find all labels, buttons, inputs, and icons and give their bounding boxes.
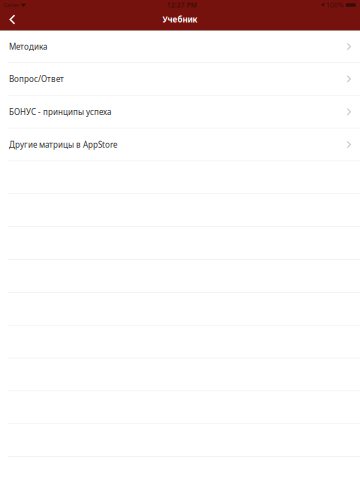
- staticText: 12:27 PM: [167, 1, 197, 9]
- staticText: БОНУС - принципы успеха: [9, 106, 111, 117]
- button[interactable]: Методика: [0, 31, 360, 63]
- staticText: 100%: [326, 1, 344, 9]
- staticText: Методика: [9, 41, 47, 52]
- button[interactable]: Back: [0, 10, 24, 29]
- staticText: Carrier: [4, 1, 20, 9]
- button[interactable]: Вопрос/Ответ: [0, 63, 360, 96]
- staticText: Вопрос/Ответ: [9, 74, 64, 84]
- button[interactable]: БОНУС - принципы успеха: [0, 96, 360, 129]
- button[interactable]: Другие матрицы в AppStore: [0, 129, 360, 161]
- staticText: Другие матрицы в AppStore: [9, 139, 118, 150]
- staticText: Учебник: [162, 14, 197, 25]
